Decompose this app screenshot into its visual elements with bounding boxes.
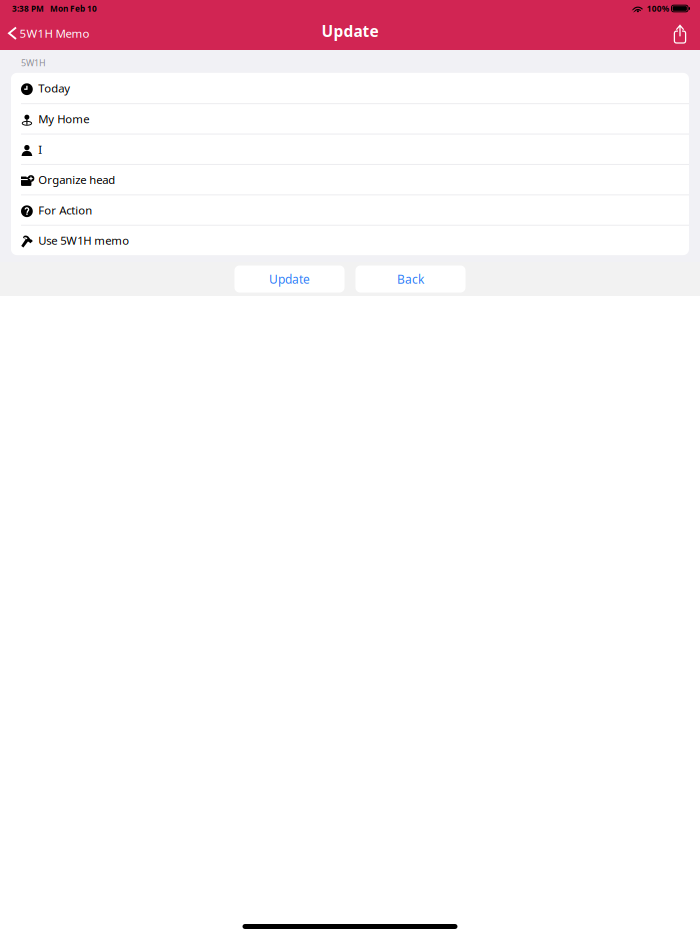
staticText: My Home: [38, 111, 89, 126]
staticText: Use 5W1H memo: [38, 233, 129, 248]
button[interactable]: Share: [664, 13, 696, 49]
staticText: Mon Feb 10: [44, 3, 97, 14]
button[interactable]: For Action: [11, 195, 689, 226]
staticText: Organize head: [38, 172, 115, 187]
button[interactable]: Update: [234, 265, 344, 292]
staticText: 100%: [647, 3, 669, 14]
staticText: 3:38 PM: [12, 3, 44, 14]
button[interactable]: Back: [355, 265, 465, 292]
staticText: Update: [269, 271, 310, 287]
button[interactable]: Today: [11, 73, 689, 104]
button[interactable]: 5W1H Memo: [0, 14, 95, 48]
button[interactable]: My Home: [11, 104, 689, 134]
staticText: Today: [38, 80, 70, 96]
staticText: 5W1H Memo: [19, 25, 89, 41]
button[interactable]: Use 5W1H memo: [11, 226, 689, 255]
staticText: Update: [321, 20, 378, 42]
staticText: For Action: [38, 202, 92, 218]
staticText: Back: [397, 271, 424, 287]
button[interactable]: Organize head: [11, 165, 689, 195]
staticText: 5W1H: [21, 57, 46, 69]
button[interactable]: I: [11, 135, 689, 165]
staticText: I: [38, 141, 42, 157]
